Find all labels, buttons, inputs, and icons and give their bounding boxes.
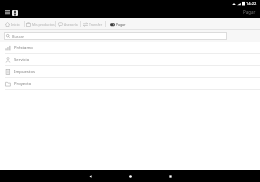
staticText: Mis productos bbox=[32, 22, 55, 27]
button[interactable]: Buscar bbox=[4, 32, 227, 40]
button[interactable]: Asesoría bbox=[56, 18, 80, 30]
staticText: 14:22 bbox=[246, 1, 257, 6]
button[interactable]: Servicio bbox=[0, 54, 260, 65]
staticText: Pagar bbox=[243, 9, 256, 15]
button[interactable]: Menú bbox=[3, 8, 11, 16]
button[interactable]: Transfer bbox=[81, 18, 105, 30]
staticText: Proyecto bbox=[14, 81, 32, 87]
button[interactable]: Proyecto bbox=[0, 78, 260, 89]
staticText: Impuestos bbox=[14, 69, 35, 75]
button[interactable]: Préstamo bbox=[0, 42, 260, 53]
staticText: Servicio bbox=[14, 57, 30, 63]
staticText: Pagar bbox=[116, 22, 126, 27]
staticText: Asesoría bbox=[64, 22, 78, 27]
button[interactable]: Impuestos bbox=[0, 66, 260, 77]
button[interactable]: Inicio bbox=[117, 170, 143, 182]
staticText: Transfer bbox=[89, 22, 103, 27]
staticText: Préstamo bbox=[14, 45, 33, 51]
staticText: Inicio bbox=[11, 22, 20, 27]
button[interactable]: Atrás bbox=[77, 170, 103, 182]
button[interactable]: Inicio bbox=[0, 18, 24, 30]
button[interactable]: Mis productos bbox=[25, 18, 55, 30]
staticText: Buscar bbox=[12, 34, 25, 39]
button[interactable]: Pagar bbox=[106, 18, 130, 30]
button[interactable]: Logo bbox=[11, 9, 18, 16]
button[interactable]: Recientes bbox=[157, 170, 183, 182]
